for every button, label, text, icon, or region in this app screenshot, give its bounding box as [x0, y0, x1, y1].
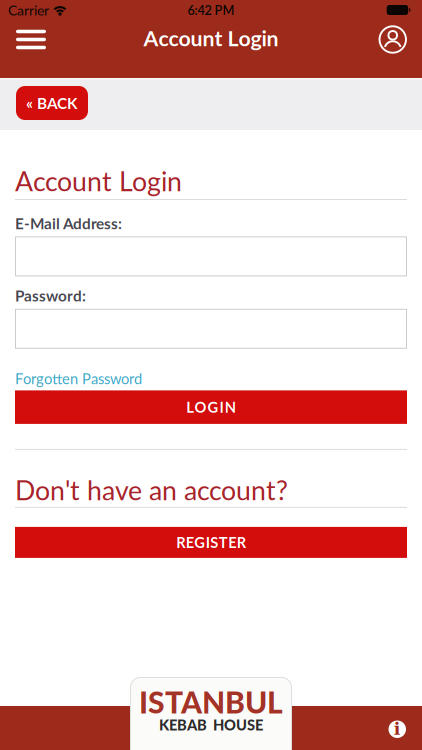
button[interactable]: REGISTER — [15, 527, 407, 558]
button[interactable]: LOGIN — [15, 390, 407, 424]
staticText: « BACK — [26, 94, 78, 112]
staticText: ISTANBUL — [139, 684, 283, 720]
button[interactable]: « BACK — [16, 86, 88, 120]
staticText: LOGIN — [186, 398, 236, 416]
button[interactable] — [0, 30, 46, 49]
button[interactable]: Forgotten Password — [15, 370, 142, 387]
staticText: Don't have an account? — [15, 474, 288, 506]
staticText: Forgotten Password — [15, 370, 142, 387]
staticText: 6:42 PM — [187, 2, 234, 18]
button[interactable]: i — [388, 720, 406, 738]
staticText: Account Login — [143, 25, 278, 51]
staticText: Password: — [15, 286, 86, 305]
staticText: Account Login — [15, 165, 182, 197]
staticText: REGISTER — [176, 534, 246, 551]
button[interactable] — [379, 26, 422, 53]
staticText: i — [394, 719, 401, 739]
staticText: KEBAB HOUSE — [159, 716, 263, 734]
staticText: Carrier — [8, 2, 49, 18]
staticText: E-Mail Address: — [15, 214, 122, 232]
